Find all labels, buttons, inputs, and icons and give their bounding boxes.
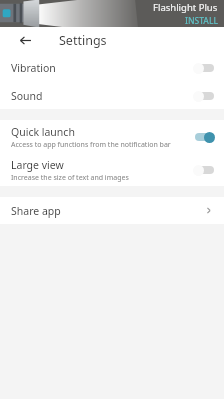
staticText: Quick launch xyxy=(11,125,75,139)
button[interactable]: Quick launch xyxy=(0,120,224,154)
staticText: Settings xyxy=(59,32,107,49)
staticText: INSTALL xyxy=(184,15,218,27)
button[interactable]: Back xyxy=(14,29,36,51)
button[interactable]: On xyxy=(193,130,215,144)
button[interactable]: Share app xyxy=(0,197,224,224)
staticText: Flashlight Plus xyxy=(153,1,218,14)
button[interactable]: Vibration xyxy=(0,53,224,83)
staticText: Vibration xyxy=(11,61,56,75)
staticText: Share app xyxy=(11,204,204,218)
button[interactable]: Off xyxy=(193,89,215,103)
button[interactable]: Sound xyxy=(0,83,224,109)
staticText: Large view xyxy=(11,158,64,172)
staticText: Increase the size of text and images xyxy=(11,173,129,183)
staticText: Sound xyxy=(11,89,43,103)
button[interactable]: Flashlight Plus xyxy=(0,0,224,27)
button[interactable]: Off xyxy=(193,61,215,75)
button[interactable]: Off xyxy=(193,163,215,177)
staticText: Access to app functions from the notific… xyxy=(11,140,171,150)
button[interactable]: Large view xyxy=(0,154,224,186)
